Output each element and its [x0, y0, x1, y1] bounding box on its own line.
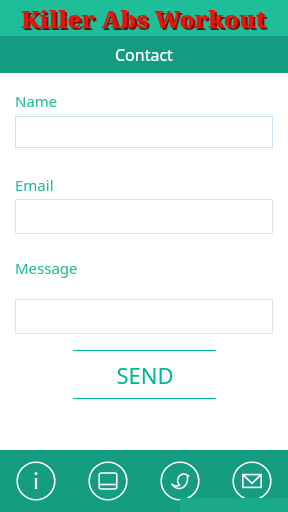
- button[interactable]: SEND: [0, 350, 288, 399]
- button[interactable]: [15, 199, 273, 234]
- button[interactable]: [15, 116, 273, 148]
- button[interactable]: Info: [0, 450, 72, 512]
- staticText: Killer Abs Workout: [21, 2, 267, 35]
- staticText: Message: [15, 258, 78, 278]
- staticText: SEND: [116, 360, 174, 390]
- button[interactable]: [15, 299, 273, 334]
- staticText: Killer Abs Workout: [23, 4, 269, 37]
- button[interactable]: Email: [216, 450, 288, 512]
- button[interactable]: Screen: [72, 450, 144, 512]
- staticText: Contact: [115, 44, 173, 66]
- button[interactable]: Twitter: [144, 450, 216, 512]
- staticText: Name: [15, 91, 58, 111]
- staticText: Email: [15, 175, 54, 195]
